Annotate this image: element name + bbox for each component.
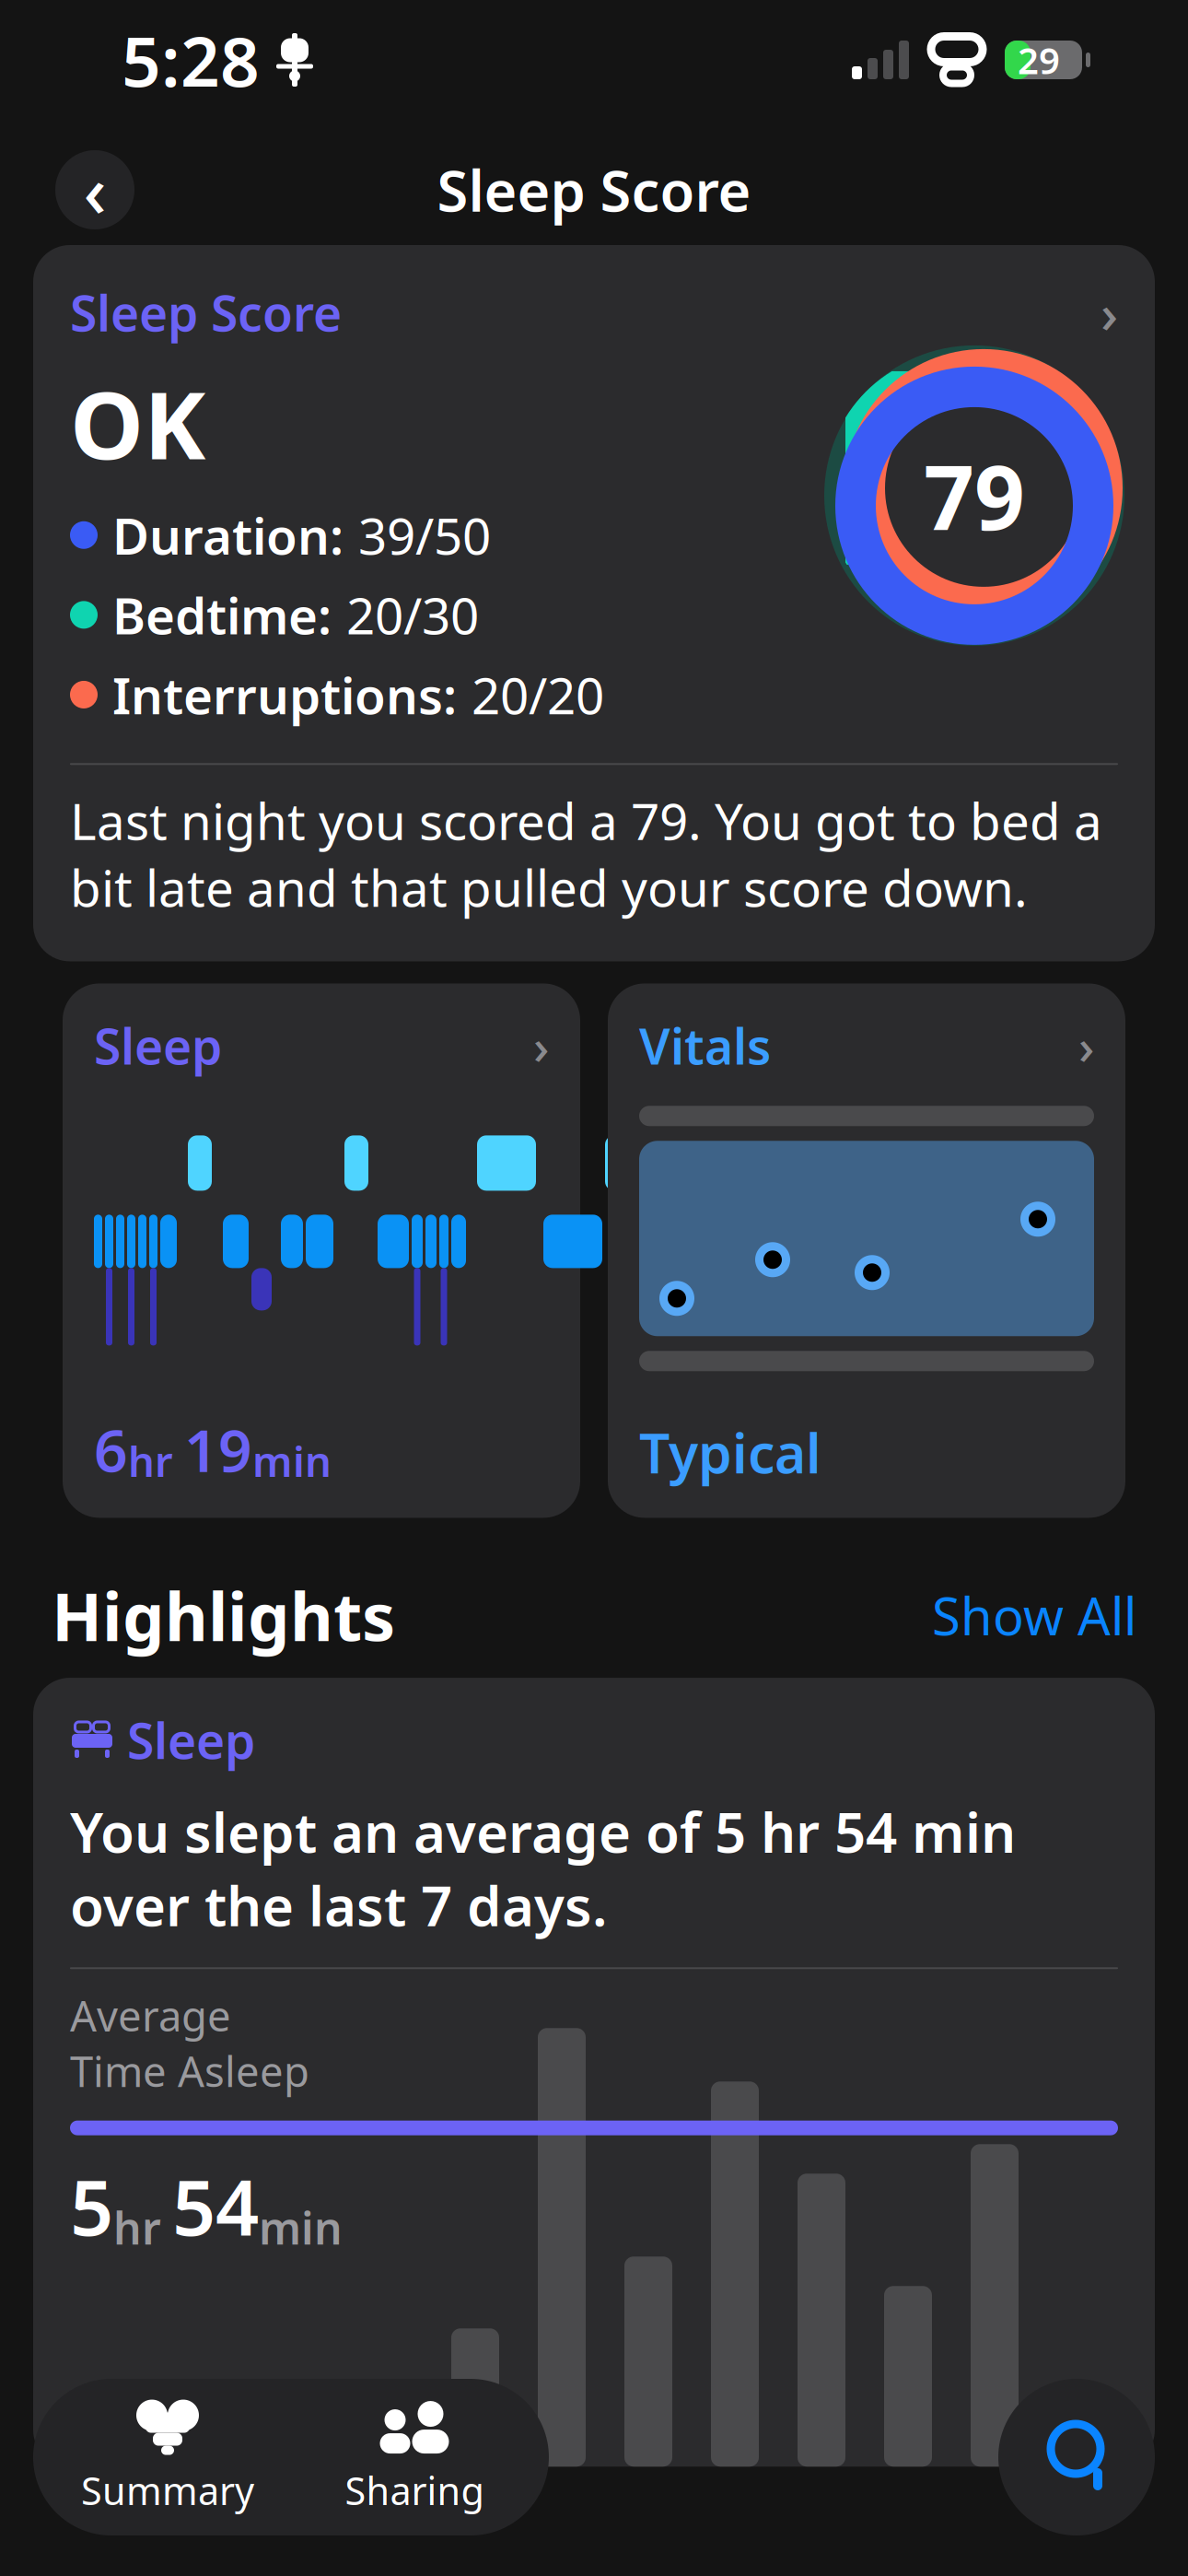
staticText: 79 — [924, 437, 1025, 554]
button[interactable]: Sleep Score — [33, 245, 1155, 961]
staticText: Average — [70, 1987, 231, 2043]
staticText: hr — [128, 1433, 184, 1488]
staticText: hr — [113, 2198, 172, 2257]
button[interactable]: Summary — [44, 2383, 291, 2531]
staticText: OK — [70, 361, 205, 485]
button[interactable]: Back — [55, 143, 134, 237]
staticText: 29 — [1018, 35, 1060, 84]
staticText: Sleep — [127, 1707, 255, 1773]
staticText: › — [1101, 276, 1118, 348]
button[interactable]: Show All — [932, 1581, 1136, 1650]
staticText: › — [533, 1013, 549, 1078]
staticText: Highlights — [52, 1571, 395, 1659]
staticText: Vitals — [639, 1013, 771, 1078]
button[interactable]: Sleep — [63, 984, 580, 1518]
button[interactable]: Sharing — [291, 2383, 538, 2531]
staticText: ‹ — [83, 143, 106, 237]
staticText: 5 — [70, 2156, 113, 2257]
staticText: Summary — [81, 2465, 254, 2516]
button[interactable]: Vitals — [608, 984, 1125, 1518]
staticText: Last night you scored a 79. You got to b… — [70, 787, 1102, 921]
staticText: 39/50 — [358, 502, 491, 569]
staticText: Sleep Score — [70, 280, 342, 345]
button[interactable]: Search — [998, 2379, 1155, 2535]
staticText: Typical — [639, 1417, 821, 1488]
staticText: Time Asleep — [70, 2043, 309, 2098]
staticText: Interruptions: — [112, 661, 457, 728]
staticText: 20/20 — [472, 661, 604, 728]
staticText: 54 — [172, 2156, 259, 2257]
staticText: Sharing — [345, 2465, 484, 2516]
staticText: 20/30 — [346, 581, 479, 648]
staticText: You slept an average of 5 hr 54 min over… — [70, 1795, 1016, 1941]
staticText: › — [1078, 1013, 1094, 1078]
staticText: min — [259, 2198, 343, 2257]
staticText: Show All — [932, 1581, 1136, 1650]
staticText: Duration: — [112, 502, 344, 569]
staticText: 6 — [94, 1410, 128, 1488]
staticText: Bedtime: — [112, 581, 332, 648]
staticText: Sleep Score — [437, 152, 751, 227]
staticText: min — [252, 1433, 332, 1488]
staticText: Sleep — [94, 1013, 222, 1078]
staticText: 19 — [184, 1410, 252, 1488]
staticText: 5:28 — [122, 14, 260, 106]
